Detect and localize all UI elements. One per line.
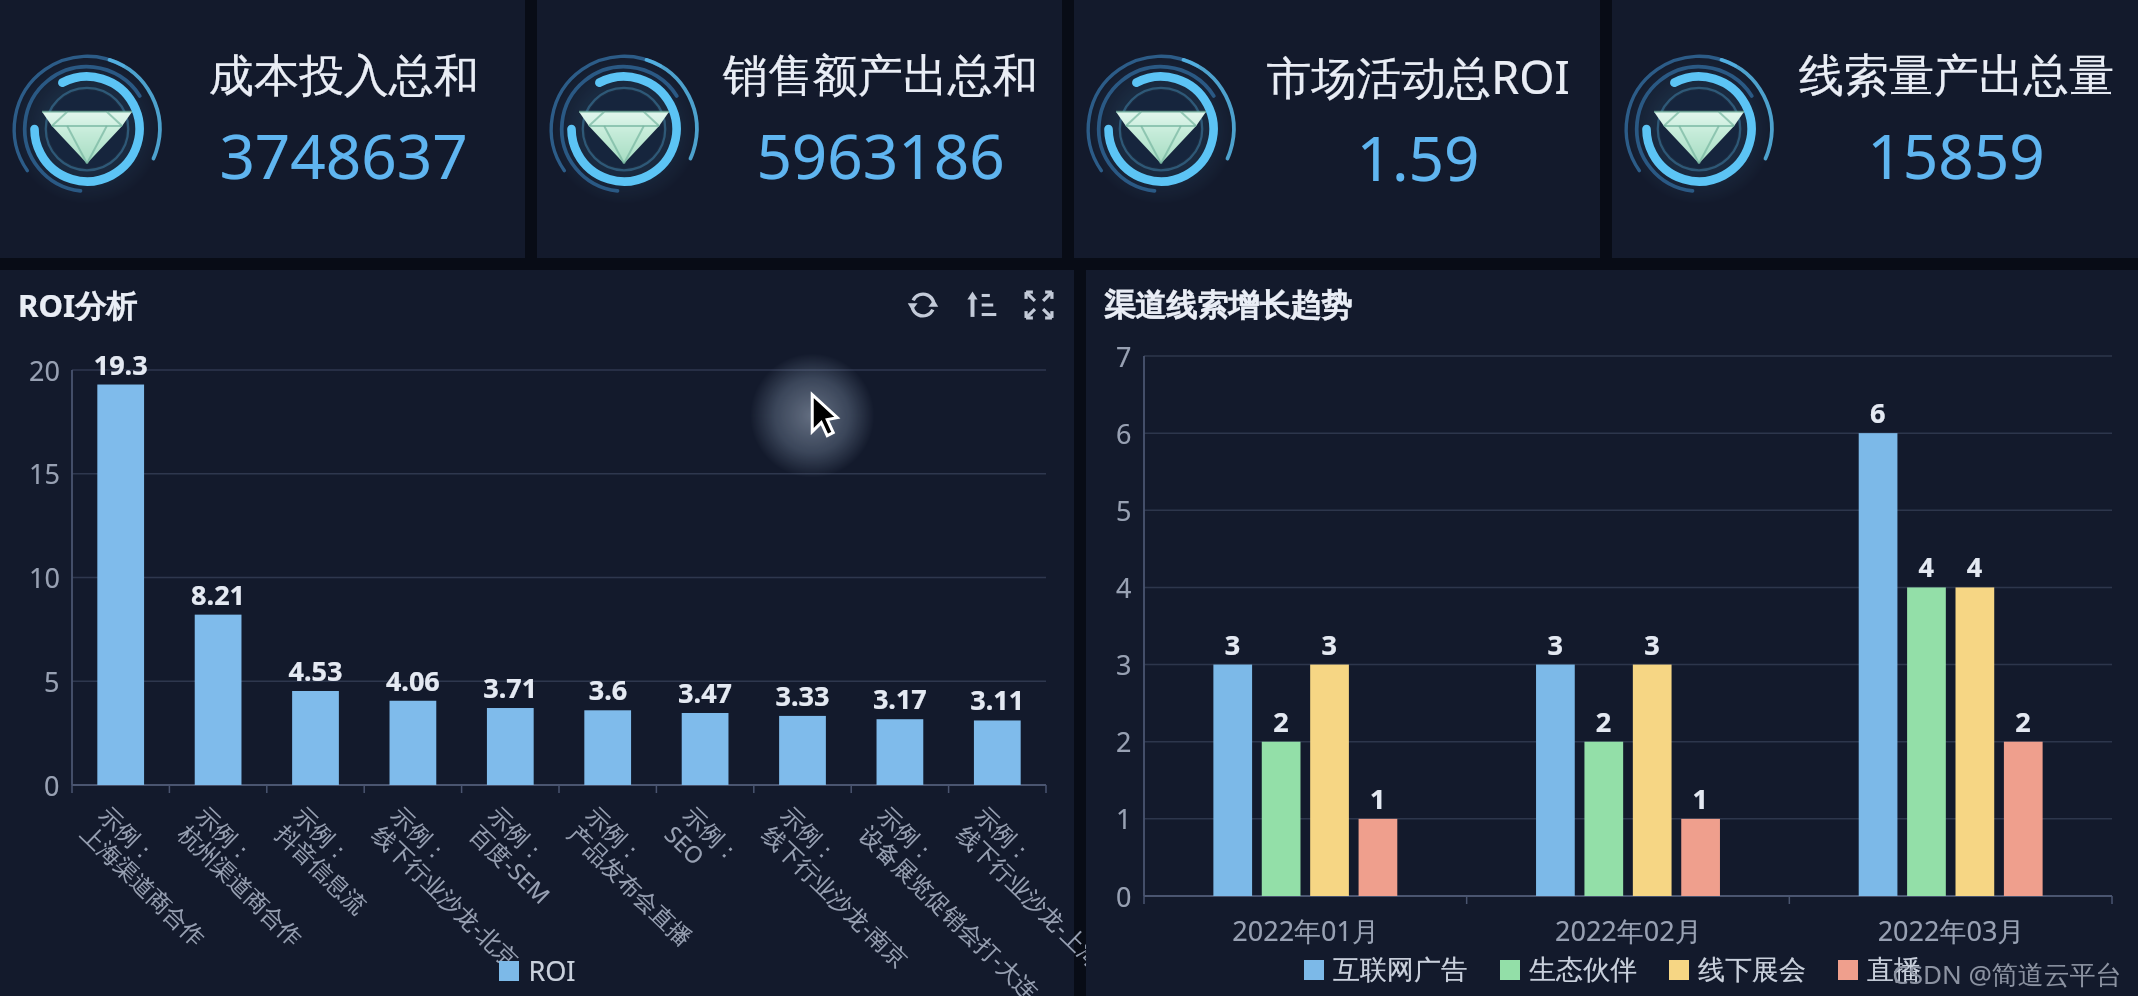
button[interactable]: 直播: [1834, 949, 1925, 991]
staticText: 互联网广告: [1333, 953, 1468, 987]
staticText: 渠道线索增长趋势: [1104, 286, 1352, 325]
staticText: 5963186: [756, 113, 1005, 197]
staticText: CSDN @简道云平台: [1892, 956, 2122, 992]
staticText: 线索量产出总量: [1799, 48, 2114, 105]
button[interactable]: 生态伙伴: [1496, 949, 1641, 991]
staticText: 15859: [1867, 113, 2045, 197]
button[interactable]: 成本投入总和: [0, 0, 525, 258]
button[interactable]: 市场活动总ROI: [1074, 0, 1600, 258]
staticText: 1.59: [1356, 115, 1480, 199]
staticText: 生态伙伴: [1529, 953, 1637, 987]
staticText: 成本投入总和: [209, 48, 479, 105]
button[interactable]: Refresh: [906, 288, 940, 322]
staticText: 3748637: [219, 113, 468, 197]
button[interactable]: 互联网广告: [1300, 949, 1472, 991]
staticText: 线下展会: [1698, 953, 1806, 987]
staticText: ROI分析: [18, 284, 137, 326]
button[interactable]: Sort: [964, 288, 998, 322]
button[interactable]: 线下展会: [1665, 949, 1810, 991]
button[interactable]: 销售额产出总和: [537, 0, 1062, 258]
button[interactable]: Fullscreen: [1022, 288, 1056, 322]
staticText: 直播: [1867, 953, 1921, 987]
button[interactable]: 线索量产出总量: [1612, 0, 2138, 258]
staticText: 销售额产出总和: [723, 48, 1038, 105]
staticText: 市场活动总ROI: [1266, 46, 1570, 107]
button[interactable]: ROI: [495, 948, 580, 993]
staticText: ROI: [528, 952, 576, 989]
